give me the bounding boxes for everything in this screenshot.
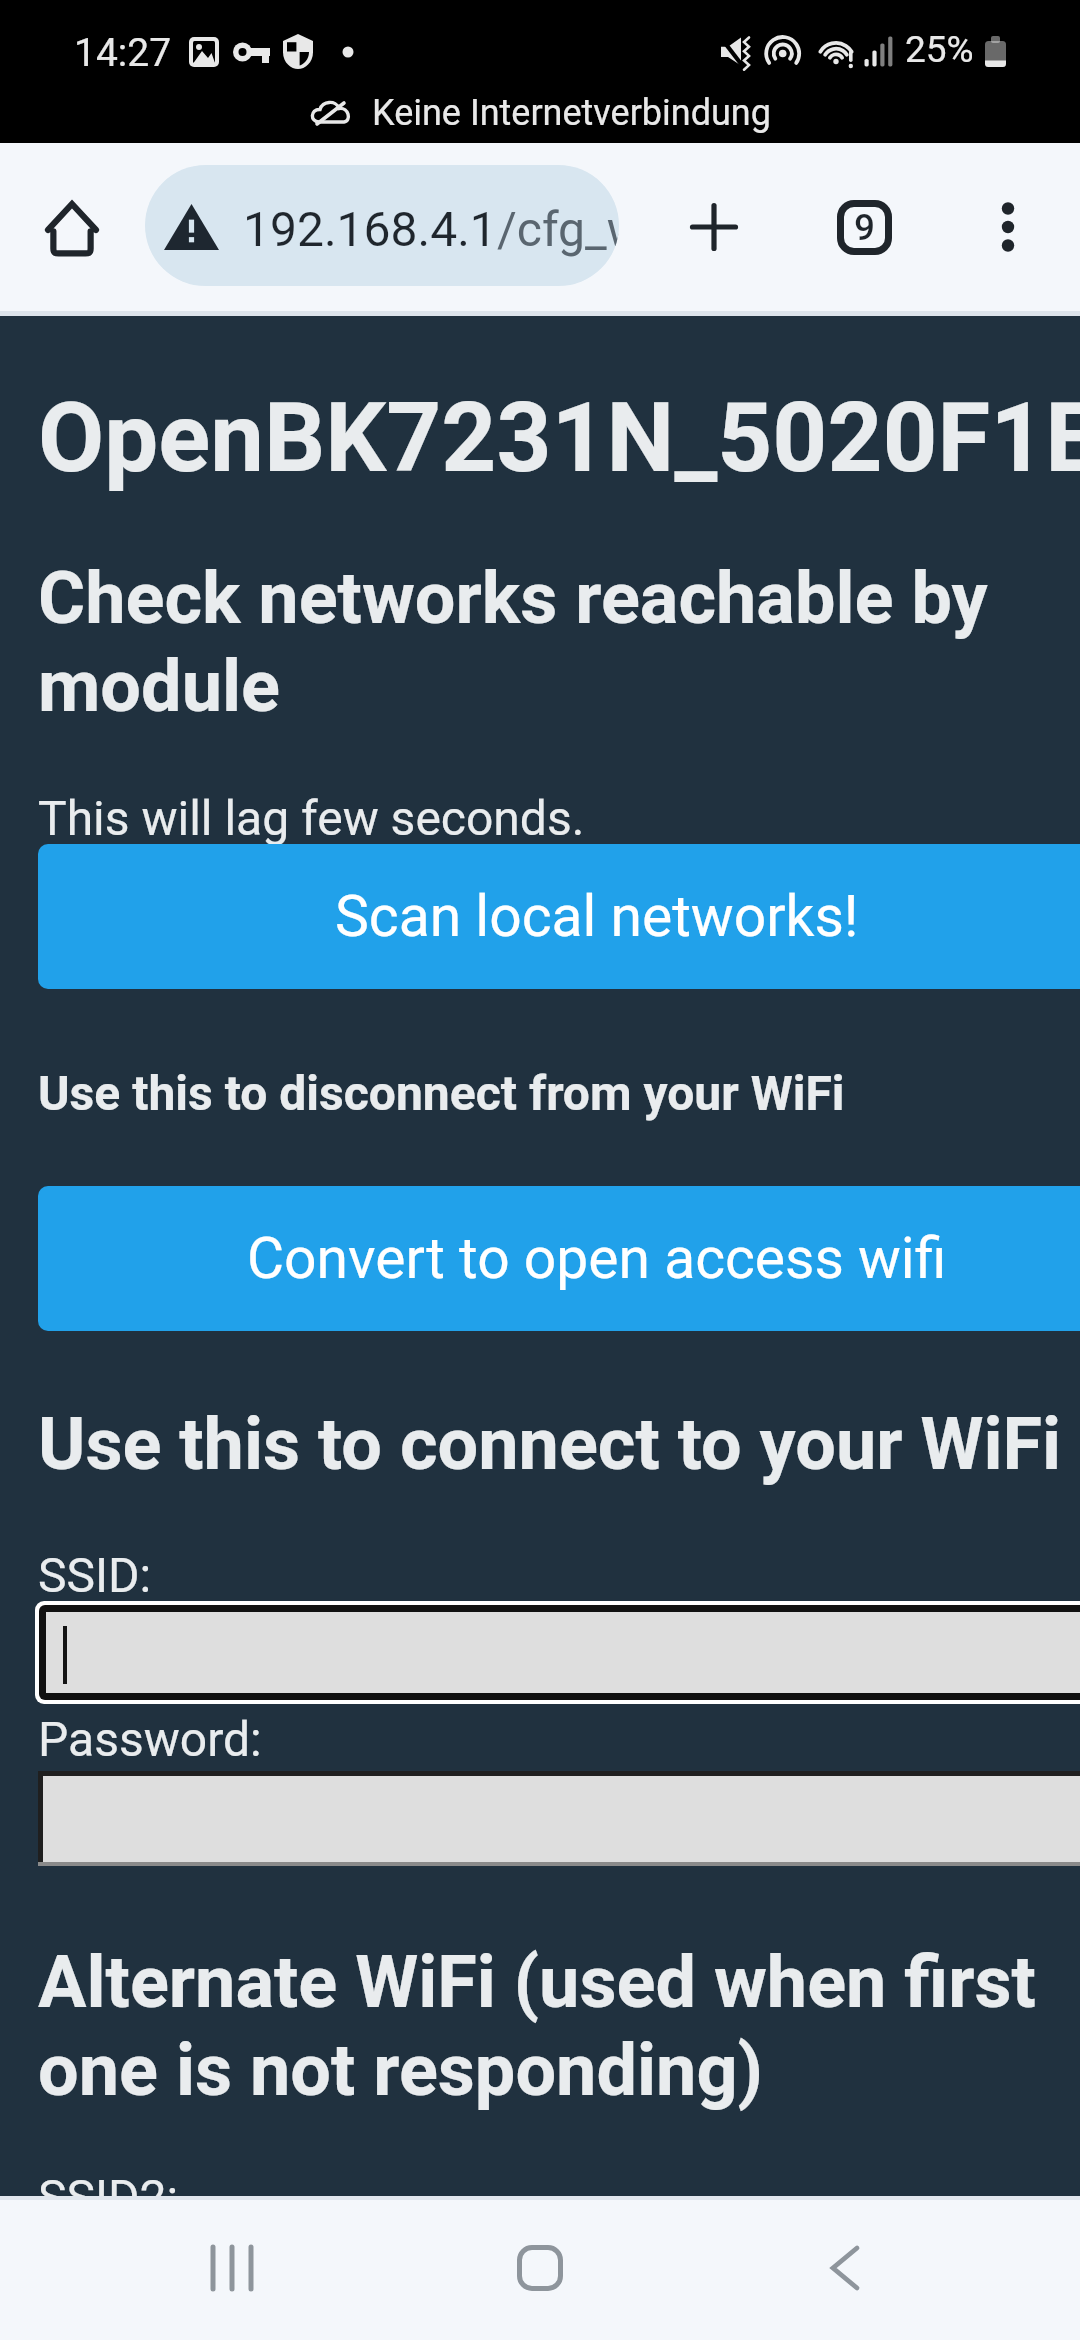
staticText: Password: [38,1711,262,1767]
staticText: Alternate WiFi (used when first one is n… [38,1940,1068,2112]
button[interactable]: Home [26,182,118,274]
staticText: This will lag few seconds. [38,790,585,846]
button[interactable]: Open tabs [818,181,910,273]
staticText: Convert to open access wifi [247,1225,947,1292]
staticText: Check networks reachable by module [38,556,1048,728]
button[interactable]: Back [775,2198,915,2338]
button[interactable]: New tab [668,181,760,273]
button[interactable]: 192.168.4.1 [145,165,619,286]
button[interactable]: Scan local networks! [38,844,1080,989]
staticText: 14:27 [74,30,172,76]
staticText: Use this to connect to your WiFi [38,1402,1062,1486]
button[interactable]: Home [470,2198,610,2338]
staticText: OpenBK7231N_5020F1E [38,382,1080,495]
staticText: SSID: [38,1547,152,1603]
staticText: 192.168.4.1 [243,201,497,257]
staticText: Keine Internetverbindung [372,92,771,134]
staticText: Use this to disconnect from your WiFi [38,1065,845,1121]
button[interactable]: Convert to open access wifi [38,1186,1080,1331]
staticText: Scan local networks! [335,883,859,950]
staticText: /cfg_w [497,201,619,257]
button[interactable]: Recent apps [165,2198,305,2338]
staticText: SSID2: [38,2169,179,2196]
button[interactable] [46,1612,1080,1693]
staticText: 9 [854,206,876,249]
staticText: 25% [905,28,974,71]
button[interactable]: More options [962,181,1054,273]
